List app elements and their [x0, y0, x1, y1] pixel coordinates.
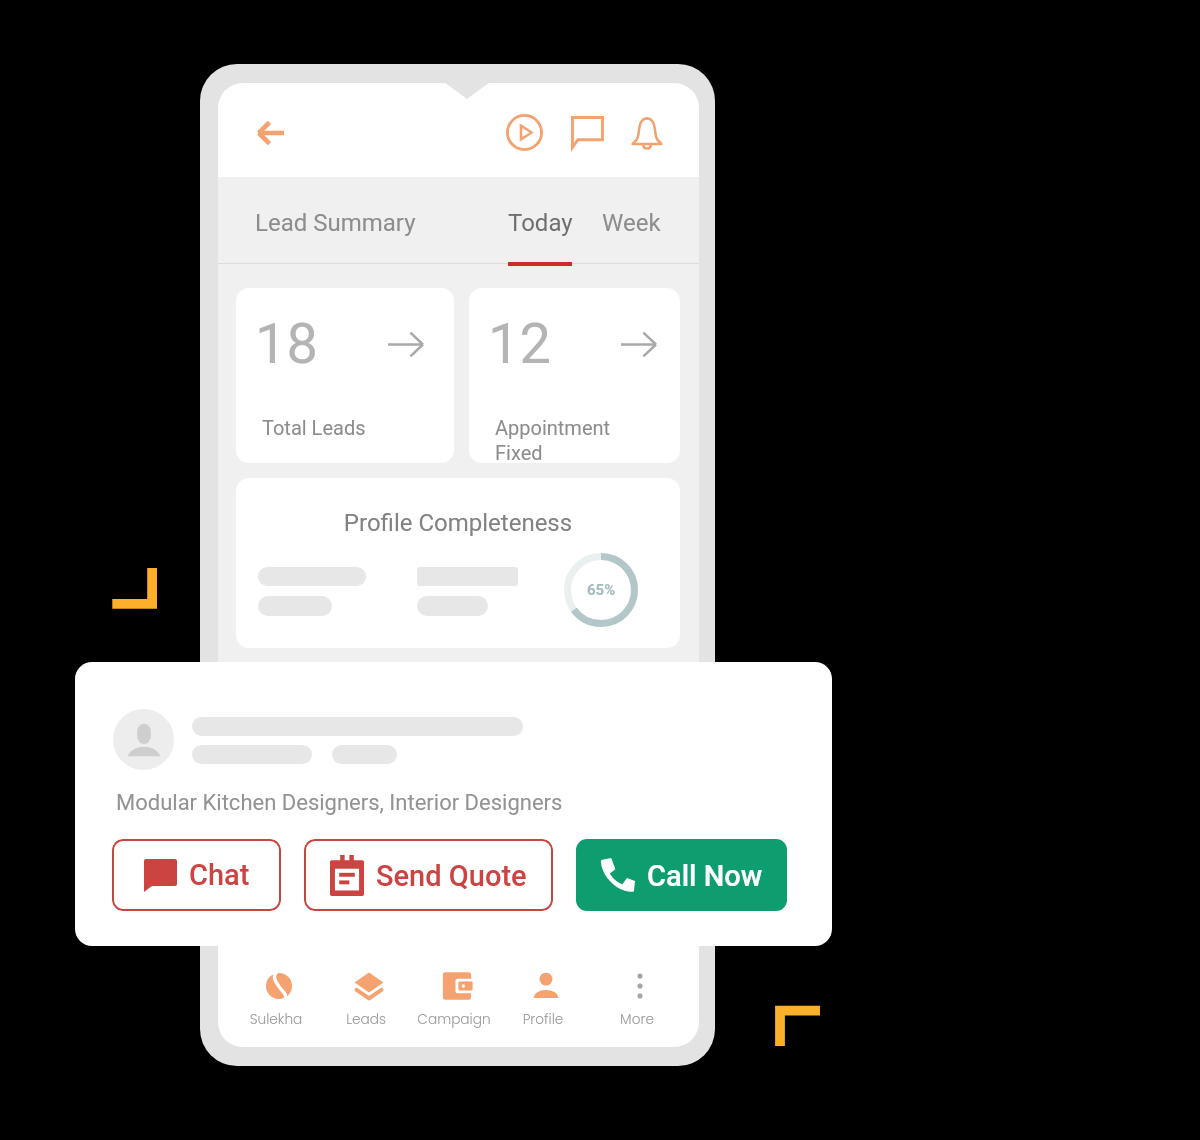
staticText: Profile Completeness	[236, 509, 680, 537]
button[interactable]: More	[592, 970, 682, 1034]
staticText: Lead Summary	[255, 209, 416, 237]
staticText: 18	[255, 311, 318, 377]
staticText: More	[592, 1010, 682, 1029]
button[interactable]: Messages	[565, 110, 610, 155]
staticText: Chat	[189, 858, 250, 892]
button[interactable]: 12	[469, 288, 680, 463]
staticText: Profile	[498, 1010, 588, 1029]
staticText: Call Now	[647, 859, 763, 893]
button[interactable]: Week	[602, 209, 661, 237]
button[interactable]: Today	[508, 209, 573, 237]
staticText: Campaign	[409, 1010, 499, 1029]
staticText: Leads	[321, 1010, 411, 1029]
button[interactable]: Back	[247, 110, 292, 155]
button[interactable]: Campaign	[409, 970, 499, 1034]
button[interactable]: Videos	[502, 110, 547, 155]
button[interactable]: Sulekha	[231, 970, 321, 1034]
staticText: Today	[508, 209, 573, 237]
button[interactable]: 18	[236, 288, 454, 463]
button[interactable]: Chat	[112, 839, 281, 911]
staticText: Total Leads	[262, 416, 366, 439]
staticText: 12	[488, 311, 551, 377]
button[interactable]: Leads	[321, 970, 411, 1034]
button[interactable]: Notifications	[624, 110, 669, 155]
button[interactable]: Send Quote	[304, 839, 553, 911]
button[interactable]: Call Now	[576, 839, 787, 911]
staticText: Appointment Fixed	[495, 416, 611, 463]
button[interactable]: Profile	[498, 970, 588, 1034]
staticText: Modular Kitchen Designers, Interior Desi…	[116, 790, 563, 816]
button[interactable]: Lead Summary	[255, 209, 416, 237]
staticText: Sulekha	[231, 1010, 321, 1029]
staticText: Send Quote	[376, 859, 527, 893]
staticText: Week	[602, 209, 661, 237]
staticText: 65%	[587, 581, 616, 599]
